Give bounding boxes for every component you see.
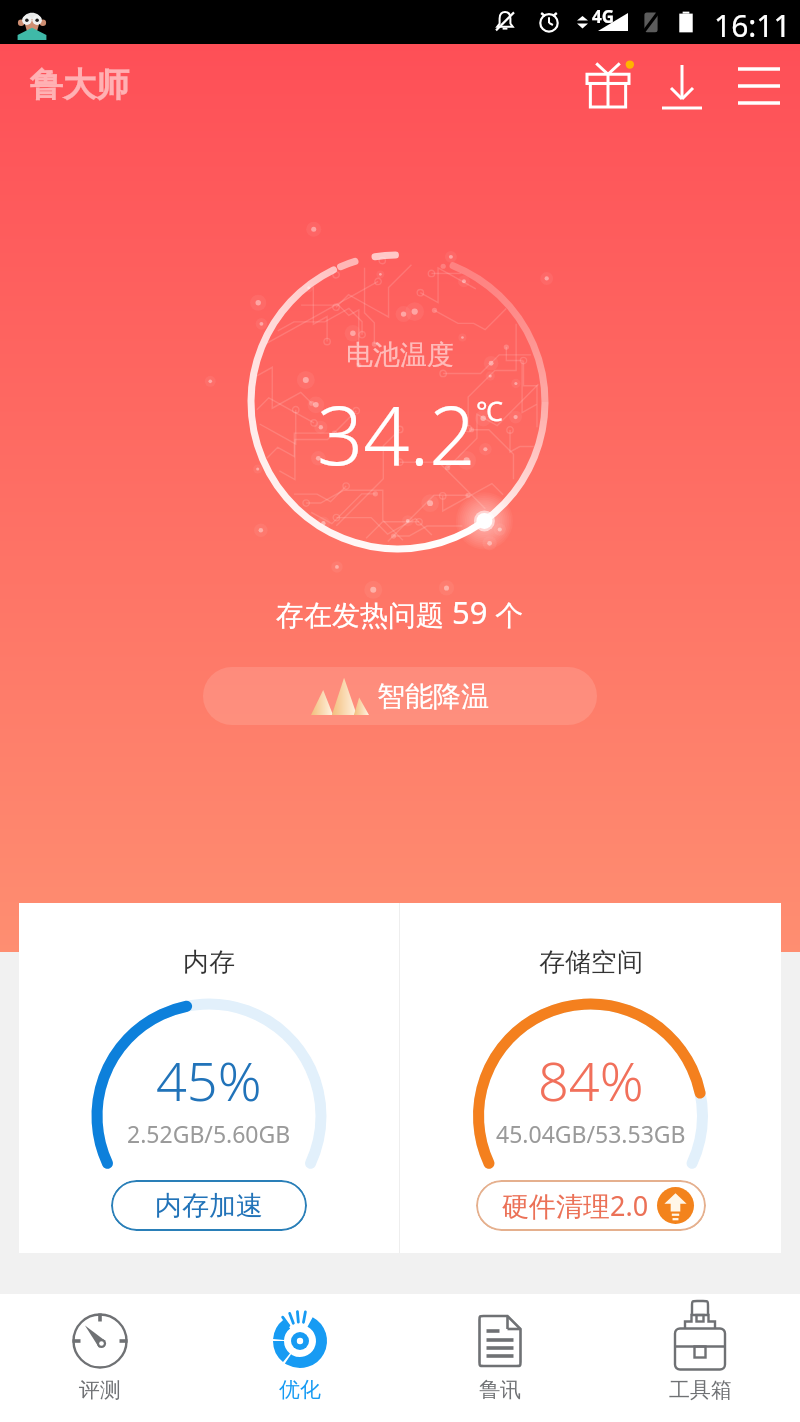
button[interactable]: 工具箱 — [600, 1294, 800, 1422]
staticText: 内存 — [183, 946, 235, 979]
button[interactable]: 硬件清理2.0 — [476, 1180, 706, 1231]
staticText: 内存加速 — [155, 1189, 263, 1223]
staticText: 优化 — [279, 1377, 321, 1403]
button[interactable]: Menu — [726, 53, 792, 119]
staticText: 34.2 — [317, 378, 476, 488]
staticText: 硬件清理2.0 — [502, 1187, 649, 1224]
staticText: 45% — [156, 1043, 262, 1117]
staticText: 工具箱 — [669, 1377, 732, 1403]
staticText: 鲁大师 — [30, 64, 129, 106]
staticText: 存储空间 — [539, 946, 643, 979]
button[interactable]: Downloads — [649, 53, 715, 119]
button[interactable]: 优化 — [200, 1294, 400, 1422]
button[interactable]: 智能降温 — [203, 667, 597, 725]
staticText: 鲁讯 — [479, 1377, 521, 1403]
staticText: 智能降温 — [377, 679, 489, 714]
button[interactable]: 评测 — [0, 1294, 200, 1422]
staticText: 4G — [592, 5, 615, 28]
staticText: 2.52GB/5.60GB — [127, 1118, 291, 1149]
staticText: 存在发热问题 — [276, 595, 452, 633]
button[interactable]: 内存加速 — [111, 1180, 307, 1231]
button[interactable]: Gifts — [575, 53, 641, 119]
staticText: 电池温度 — [346, 338, 454, 372]
staticText: 16:11 — [714, 5, 791, 46]
staticText: 评测 — [79, 1377, 121, 1403]
staticText: 59 — [452, 591, 488, 633]
staticText: 个 — [488, 595, 524, 633]
staticText: 84% — [538, 1043, 644, 1117]
staticText: ℃ — [476, 392, 503, 429]
staticText: 45.04GB/53.53GB — [496, 1118, 686, 1149]
button[interactable]: 鲁讯 — [400, 1294, 600, 1422]
